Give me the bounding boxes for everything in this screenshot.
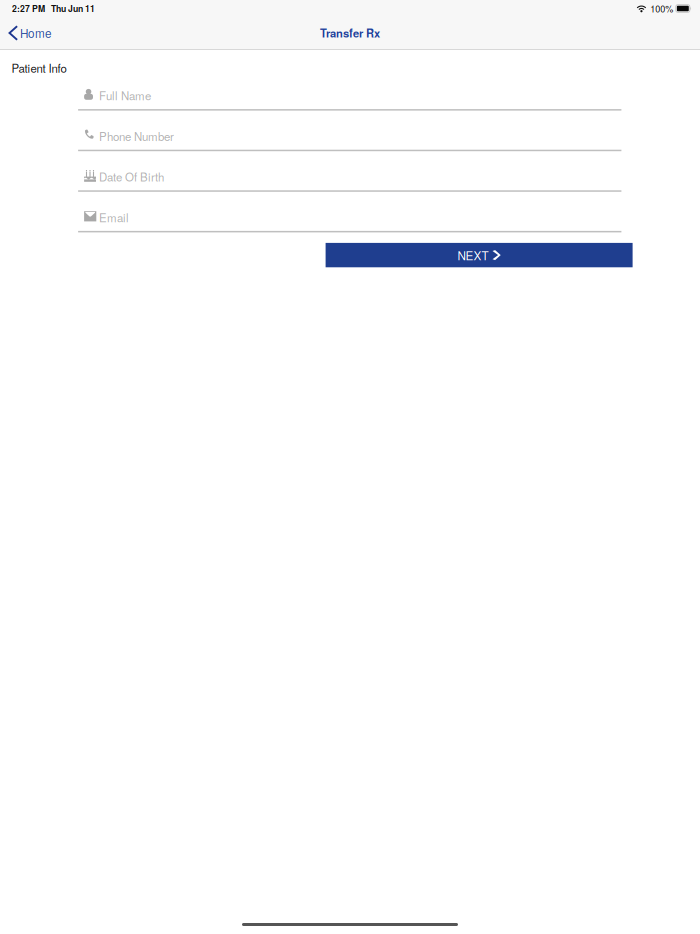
staticText: Home [20, 25, 52, 41]
staticText: Thu Jun 11 [51, 2, 95, 15]
button[interactable]: Home [0, 17, 60, 49]
button[interactable]: NEXT [326, 243, 633, 267]
button[interactable]: Email [78, 192, 621, 232]
button[interactable]: Phone Number [78, 111, 621, 151]
staticText: Full Name [99, 87, 151, 104]
staticText: 100% [650, 2, 673, 15]
button[interactable]: Date Of Birth [78, 151, 621, 192]
staticText: Patient Info [11, 59, 66, 76]
staticText: NEXT [457, 247, 488, 263]
staticText: Date Of Birth [99, 168, 164, 185]
staticText: 2:27 PM [12, 2, 45, 15]
button[interactable]: Full Name [78, 70, 621, 111]
staticText: Email [99, 209, 129, 225]
staticText: Transfer Rx [320, 25, 380, 41]
staticText: Phone Number [99, 128, 174, 144]
